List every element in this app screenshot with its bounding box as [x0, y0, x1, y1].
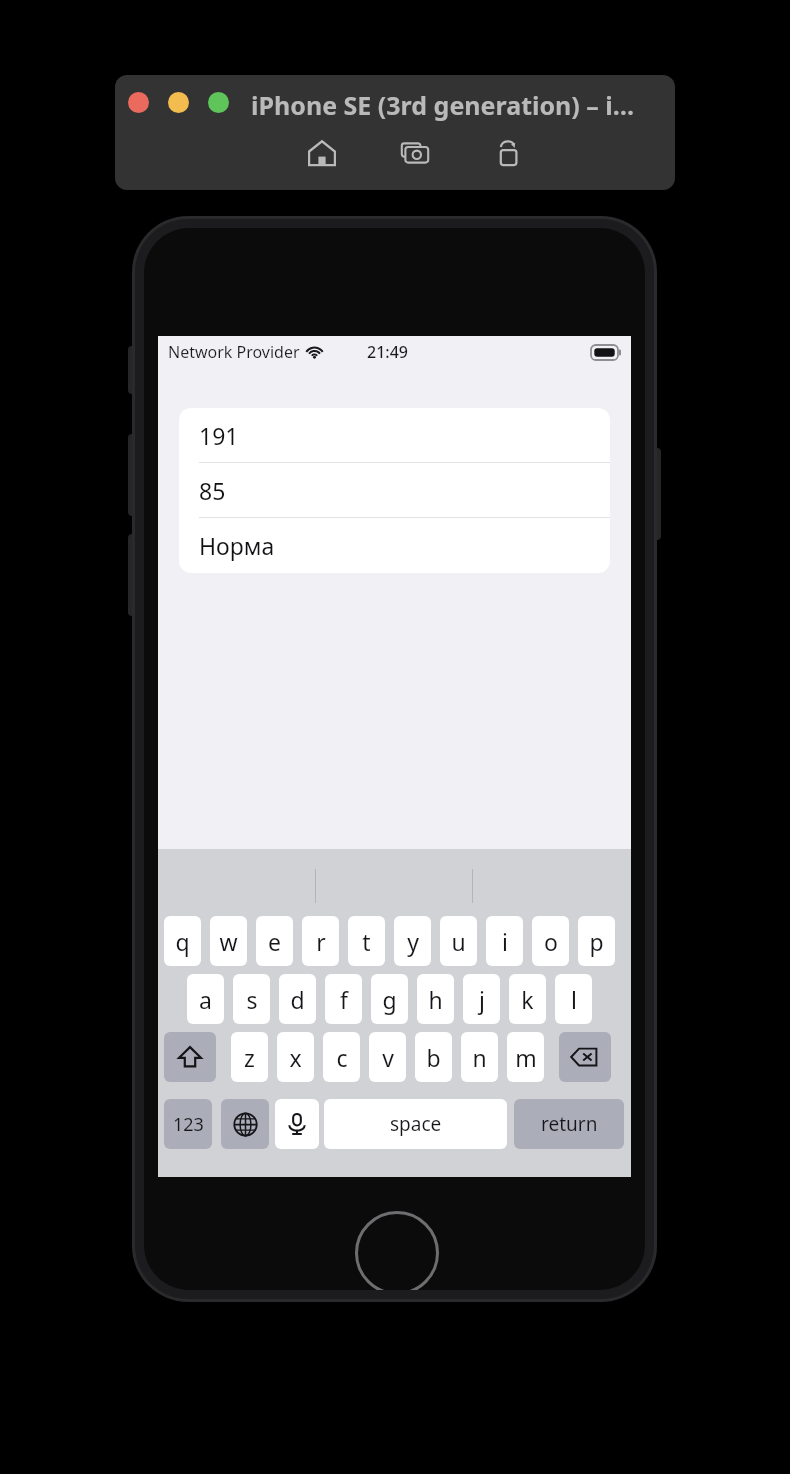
- button[interactable]: Rotate: [489, 134, 527, 172]
- button[interactable]: Zoom: [208, 92, 229, 113]
- staticText: t: [362, 926, 371, 957]
- staticText: j: [479, 984, 485, 1015]
- staticText: g: [382, 984, 397, 1015]
- button[interactable]: s: [233, 974, 270, 1024]
- staticText: l: [571, 984, 577, 1015]
- staticText: 85: [199, 475, 226, 506]
- button[interactable]: v: [369, 1032, 406, 1082]
- staticText: 21:49: [367, 341, 408, 363]
- button[interactable]: Норма: [179, 518, 610, 573]
- button[interactable]: c: [323, 1032, 360, 1082]
- staticText: s: [246, 984, 258, 1015]
- button[interactable]: o: [532, 916, 569, 966]
- staticText: v: [382, 1042, 394, 1073]
- staticText: r: [316, 926, 326, 957]
- button[interactable]: q: [164, 916, 201, 966]
- button[interactable]: Change keyboard: [221, 1099, 269, 1149]
- button[interactable]: j: [463, 974, 500, 1024]
- button[interactable]: b: [415, 1032, 452, 1082]
- staticText: w: [219, 926, 238, 957]
- button[interactable]: Delete: [559, 1032, 611, 1082]
- staticText: m: [515, 1042, 537, 1073]
- button[interactable]: Screenshot: [396, 134, 434, 172]
- staticText: 123: [173, 1112, 204, 1137]
- staticText: u: [451, 926, 466, 957]
- staticText: c: [336, 1042, 348, 1073]
- staticText: o: [544, 926, 558, 957]
- button[interactable]: x: [277, 1032, 314, 1082]
- staticText: i: [502, 926, 508, 957]
- staticText: z: [244, 1042, 255, 1073]
- staticText: p: [589, 926, 604, 957]
- staticText: iPhone SE (3rd generation) – i…: [251, 88, 635, 122]
- button[interactable]: y: [394, 916, 431, 966]
- button[interactable]: Home button: [355, 1211, 439, 1290]
- button[interactable]: space: [324, 1099, 507, 1149]
- staticText: a: [199, 984, 212, 1015]
- button[interactable]: d: [279, 974, 316, 1024]
- button[interactable]: k: [509, 974, 546, 1024]
- button[interactable]: 191: [179, 408, 610, 463]
- staticText: e: [268, 926, 281, 957]
- staticText: 191: [199, 420, 239, 451]
- button[interactable]: Close: [128, 92, 149, 113]
- staticText: y: [407, 926, 419, 957]
- button[interactable]: f: [325, 974, 362, 1024]
- button[interactable]: l: [555, 974, 592, 1024]
- staticText: Network Provider: [168, 341, 300, 363]
- button[interactable]: return: [514, 1099, 624, 1149]
- staticText: f: [340, 984, 348, 1015]
- button[interactable]: p: [578, 916, 615, 966]
- staticText: n: [472, 1042, 487, 1073]
- staticText: q: [175, 926, 190, 957]
- button[interactable]: Dictate: [275, 1099, 319, 1149]
- button[interactable]: g: [371, 974, 408, 1024]
- staticText: d: [290, 984, 305, 1015]
- button[interactable]: 85: [179, 463, 610, 518]
- staticText: x: [289, 1042, 302, 1073]
- button[interactable]: Shift: [164, 1032, 216, 1082]
- button[interactable]: w: [210, 916, 247, 966]
- button[interactable]: t: [348, 916, 385, 966]
- button[interactable]: Home: [303, 134, 341, 172]
- button[interactable]: Minimise: [168, 92, 189, 113]
- button[interactable]: h: [417, 974, 454, 1024]
- button[interactable]: Numbers: [164, 1099, 212, 1149]
- button[interactable]: n: [461, 1032, 498, 1082]
- button[interactable]: r: [302, 916, 339, 966]
- button[interactable]: e: [256, 916, 293, 966]
- button[interactable]: a: [187, 974, 224, 1024]
- button[interactable]: m: [507, 1032, 544, 1082]
- staticText: b: [426, 1042, 441, 1073]
- button[interactable]: i: [486, 916, 523, 966]
- button[interactable]: u: [440, 916, 477, 966]
- staticText: space: [390, 1111, 442, 1137]
- staticText: h: [428, 984, 443, 1015]
- button[interactable]: z: [231, 1032, 268, 1082]
- staticText: k: [521, 984, 534, 1015]
- staticText: Норма: [199, 530, 275, 561]
- staticText: return: [541, 1111, 598, 1137]
